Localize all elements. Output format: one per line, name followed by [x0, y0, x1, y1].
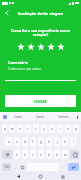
- staticText: ENVIAR: [34, 99, 47, 104]
- staticText: q: [4, 127, 6, 131]
- staticText: r: [27, 127, 29, 131]
- staticText: .: [63, 165, 64, 169]
- staticText: x: [24, 153, 26, 157]
- staticText: a: [8, 140, 10, 144]
- button[interactable]: e: [17, 124, 23, 133]
- button[interactable]: Conte: [7, 112, 29, 121]
- staticText: ?123: [4, 165, 10, 169]
- button[interactable]: Gboard: [3, 115, 7, 119]
- button[interactable]: Shift: [2, 150, 12, 159]
- button[interactable]: j: [54, 137, 60, 146]
- button[interactable]: Emoji: [20, 163, 25, 171]
- staticText: e: [19, 127, 21, 131]
- staticText: s: [16, 140, 18, 144]
- button[interactable]: k: [62, 137, 68, 146]
- button[interactable]: s: [14, 137, 20, 146]
- button[interactable]: v: [38, 150, 44, 159]
- staticText: Como foi a sua experiência nessa estação…: [7, 28, 74, 37]
- button[interactable]: l: [70, 137, 76, 146]
- staticText: Conte-: [36, 115, 45, 119]
- staticText: v: [40, 153, 42, 157]
- button[interactable]: n: [54, 150, 60, 159]
- button[interactable]: b: [46, 150, 52, 159]
- button[interactable]: z: [14, 150, 20, 159]
- staticText: l: [73, 140, 74, 144]
- button[interactable]: d: [22, 137, 28, 146]
- staticText: c: [32, 153, 34, 157]
- button[interactable]: a: [5, 137, 12, 146]
- staticText: o: [67, 127, 69, 131]
- button[interactable]: o: [65, 124, 71, 133]
- staticText: n: [56, 153, 58, 157]
- staticText: j: [57, 140, 58, 144]
- button[interactable]: h: [46, 137, 52, 146]
- button[interactable]: Contem: [52, 112, 75, 121]
- button[interactable]: m: [62, 150, 68, 159]
- staticText: Contem: [58, 115, 69, 119]
- staticText: p: [75, 127, 77, 131]
- button[interactable]: Início: [37, 173, 44, 180]
- button[interactable]: w: [9, 124, 15, 133]
- staticText: k: [64, 140, 66, 144]
- button[interactable]: Voltar: [2, 8, 12, 18]
- button[interactable]: ?123: [2, 163, 11, 171]
- staticText: z: [16, 153, 18, 157]
- staticText: Conte: [14, 115, 22, 119]
- staticText: g: [40, 140, 42, 144]
- staticText: Comentário: [8, 60, 28, 65]
- staticText: t: [35, 127, 37, 131]
- staticText: y: [43, 127, 45, 131]
- button[interactable]: y: [41, 124, 47, 133]
- button[interactable]: Recentes: [59, 173, 66, 180]
- staticText: i: [60, 127, 61, 131]
- button[interactable]: Avaliar 5 estrelas: [56, 42, 66, 52]
- staticText: u: [51, 127, 53, 131]
- button[interactable]: f: [30, 137, 36, 146]
- staticText: f: [32, 140, 34, 144]
- staticText: d: [24, 140, 26, 144]
- button[interactable]: c: [30, 150, 36, 159]
- button[interactable]: p: [73, 124, 79, 133]
- button[interactable]: Conte-: [29, 112, 52, 121]
- button[interactable]: u: [49, 124, 55, 133]
- staticText: b: [48, 153, 50, 157]
- staticText: w: [11, 127, 14, 131]
- button[interactable]: q: [2, 124, 7, 133]
- button[interactable]: ENVIAR: [5, 95, 76, 107]
- button[interactable]: Avaliar 1 estrelas: [16, 42, 26, 52]
- staticText: m: [64, 153, 67, 157]
- button[interactable]: x: [22, 150, 28, 159]
- staticText: ,: [15, 165, 16, 169]
- button[interactable]: i: [57, 124, 63, 133]
- button[interactable]: ,: [13, 163, 18, 171]
- button[interactable]: Backspace: [70, 150, 79, 159]
- staticText: h: [48, 140, 50, 144]
- button[interactable]: Enter: [68, 163, 79, 171]
- button[interactable]: Avaliar 4 estrelas: [46, 42, 56, 52]
- button[interactable]: Voltar: [15, 173, 22, 180]
- button[interactable]: r: [25, 124, 31, 133]
- button[interactable]: Avaliar 3 estrelas: [36, 42, 46, 52]
- button[interactable]: Avaliar 2 estrelas: [26, 42, 36, 52]
- button[interactable]: .: [61, 163, 66, 171]
- staticText: Avaliação da/do viagem: [18, 11, 64, 16]
- button[interactable]: g: [38, 137, 44, 146]
- staticText: Conte-nos o que achou: [8, 67, 41, 71]
- button[interactable]: t: [33, 124, 39, 133]
- button[interactable]: Voz: [75, 115, 79, 119]
